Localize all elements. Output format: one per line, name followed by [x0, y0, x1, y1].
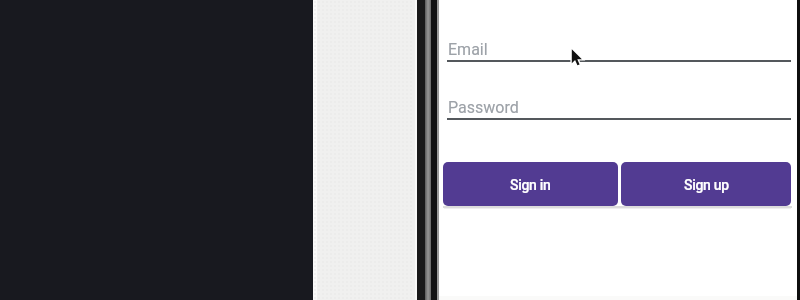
button[interactable]: Sign in: [443, 162, 618, 206]
staticText: Email: [448, 40, 488, 59]
staticText: Password: [448, 98, 519, 117]
staticText: Sign up: [684, 177, 729, 193]
staticText: Sign in: [510, 177, 551, 193]
button[interactable]: Password: [447, 88, 791, 120]
button[interactable]: Sign up: [621, 162, 791, 206]
button[interactable]: Email: [447, 30, 791, 62]
